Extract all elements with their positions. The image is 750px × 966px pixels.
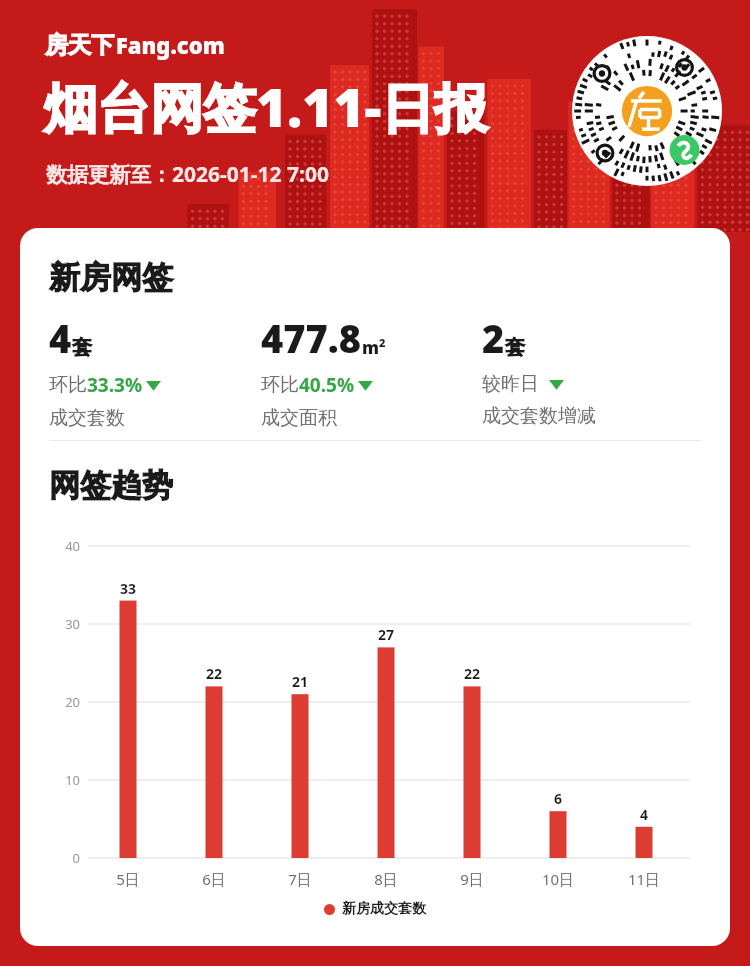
staticText: 477.8 (261, 312, 362, 364)
staticText: 数据更新至：2026-01-12 7:00 (46, 160, 329, 189)
staticText: 套 (72, 335, 92, 360)
staticText: 22 (447, 664, 497, 683)
staticText: 5日 (98, 869, 158, 889)
staticText: 较昨日 (482, 372, 539, 396)
staticText: 33.3% (87, 372, 143, 398)
button[interactable]: 新房成交套数 (324, 900, 426, 918)
staticText: 网签趋势 (49, 466, 173, 505)
staticText: 8日 (356, 869, 416, 889)
staticText: 6 (533, 789, 583, 808)
staticText: 21 (275, 672, 325, 691)
staticText: 2 (482, 312, 505, 364)
staticText: 4 (619, 805, 669, 824)
staticText: 套 (505, 335, 525, 360)
staticText: 20 (40, 693, 80, 711)
staticText: 22 (189, 664, 239, 683)
staticText: 9日 (442, 869, 502, 889)
staticText: 30 (40, 615, 80, 633)
staticText: 10日 (528, 869, 588, 889)
staticText: 11日 (614, 869, 674, 889)
staticText: 房天下 (45, 31, 114, 60)
staticText: 4 (49, 312, 72, 364)
staticText: 新房成交套数 (342, 900, 426, 918)
staticText: 33 (103, 579, 153, 598)
staticText: 成交套数 (49, 406, 125, 430)
staticText: 6日 (184, 869, 244, 889)
staticText: 新房网签 (49, 258, 173, 297)
staticText: 10 (40, 771, 80, 789)
staticText: 环比 (49, 373, 87, 397)
staticText: 2 (379, 335, 386, 350)
staticText: 环比 (261, 373, 299, 397)
button[interactable]: 2 (482, 312, 596, 428)
staticText: 7日 (270, 869, 330, 889)
button[interactable]: 4 (49, 312, 161, 430)
staticText: m (362, 336, 379, 359)
button[interactable]: 房天下 (45, 30, 225, 60)
button[interactable]: 477.8 (261, 312, 386, 430)
staticText: 40 (40, 537, 80, 555)
button[interactable]: 微信小程序二维码 (572, 36, 722, 186)
staticText: 40.5% (299, 372, 355, 398)
staticText: Fang.com (116, 30, 225, 60)
staticText: 0 (40, 849, 80, 867)
staticText: 成交面积 (261, 406, 337, 430)
staticText: 27 (361, 625, 411, 644)
staticText: 烟台网签1.11-日报 (44, 70, 488, 142)
staticText: 成交套数增减 (482, 404, 596, 428)
